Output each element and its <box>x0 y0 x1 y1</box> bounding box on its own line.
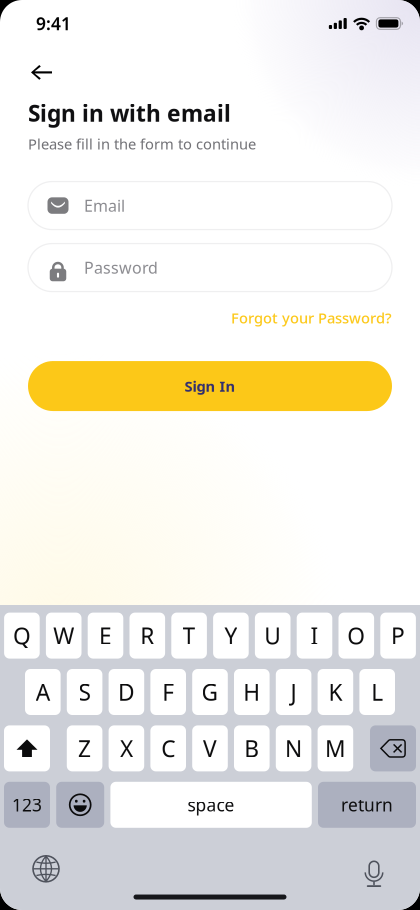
button[interactable]: E <box>88 613 123 659</box>
staticText: F <box>162 677 174 707</box>
button[interactable]: F <box>150 669 186 715</box>
staticText: Q <box>13 620 31 651</box>
button[interactable]: 123 <box>4 782 50 828</box>
staticText: 123 <box>12 793 42 816</box>
staticText: Sign In <box>184 376 235 396</box>
button[interactable]: K <box>318 669 353 715</box>
staticText: J <box>291 677 297 707</box>
button[interactable]: S <box>67 669 102 715</box>
button[interactable]: H <box>234 669 270 715</box>
button[interactable]: Z <box>67 725 102 771</box>
staticText: return <box>341 793 393 816</box>
staticText: Please fill in the form to continue <box>28 134 256 154</box>
staticText: M <box>325 733 346 763</box>
button[interactable]: P <box>380 613 416 659</box>
staticText: Email <box>84 195 125 216</box>
button[interactable]: D <box>109 669 144 715</box>
staticText: R <box>140 620 154 651</box>
staticText: X <box>120 733 133 763</box>
button[interactable]: Delete <box>370 725 416 771</box>
staticText: P <box>391 620 405 651</box>
button[interactable]: U <box>255 613 290 659</box>
staticText: U <box>264 620 281 651</box>
button[interactable]: Sign In <box>28 361 392 411</box>
staticText: L <box>371 677 383 707</box>
button[interactable]: space <box>110 782 312 828</box>
staticText: S <box>79 677 91 707</box>
staticText: W <box>53 620 74 651</box>
staticText: O <box>347 620 365 651</box>
staticText: Y <box>224 620 237 651</box>
staticText: Password <box>84 257 158 278</box>
staticText: Z <box>78 733 91 763</box>
staticText: space <box>188 793 235 816</box>
staticText: N <box>285 733 302 763</box>
staticText: T <box>183 620 196 651</box>
staticText: E <box>99 620 112 651</box>
staticText: C <box>161 733 175 763</box>
staticText: Forgot your Password? <box>231 308 392 328</box>
button[interactable]: Dictation <box>350 846 398 892</box>
staticText: A <box>36 677 50 707</box>
button[interactable]: T <box>171 613 207 659</box>
button[interactable]: O <box>338 613 374 659</box>
button[interactable]: B <box>234 725 270 771</box>
button[interactable]: Switch keyboard <box>22 846 70 892</box>
button[interactable]: return <box>318 782 416 828</box>
button[interactable]: R <box>129 613 165 659</box>
staticText: I <box>310 620 318 651</box>
button[interactable]: J <box>276 669 311 715</box>
staticText: V <box>203 733 217 763</box>
button[interactable]: Back <box>31 47 75 98</box>
staticText: H <box>243 677 260 707</box>
button[interactable]: C <box>150 725 186 771</box>
button[interactable]: G <box>192 669 228 715</box>
button[interactable]: I <box>297 613 332 659</box>
button[interactable]: L <box>359 669 395 715</box>
staticText: D <box>118 677 135 707</box>
button[interactable]: W <box>46 613 81 659</box>
button[interactable]: Emoji <box>56 782 104 828</box>
button[interactable]: Email <box>28 182 392 230</box>
button[interactable]: N <box>276 725 311 771</box>
button[interactable]: M <box>318 725 353 771</box>
staticText: 9:41 <box>36 12 71 35</box>
staticText: Sign in with email <box>28 98 231 128</box>
staticText: G <box>201 677 218 707</box>
button[interactable]: Shift <box>4 725 50 771</box>
button[interactable]: X <box>109 725 144 771</box>
button[interactable]: Password <box>28 244 392 292</box>
button[interactable]: V <box>192 725 228 771</box>
staticText: B <box>244 733 259 763</box>
staticText: K <box>328 677 342 707</box>
button[interactable]: A <box>25 669 61 715</box>
button[interactable]: Q <box>4 613 40 659</box>
button[interactable]: Y <box>213 613 249 659</box>
button[interactable]: Forgot your Password? <box>231 308 392 328</box>
